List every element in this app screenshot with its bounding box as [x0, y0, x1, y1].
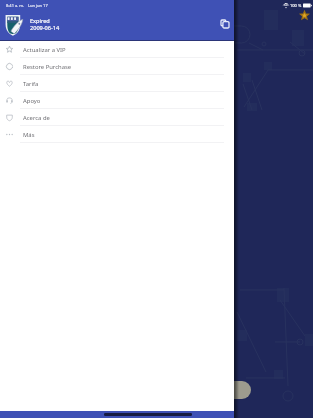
staticText: Apoyo: [23, 97, 41, 105]
button[interactable]: Apoyo: [0, 92, 234, 109]
button[interactable]: Tarifa: [0, 75, 234, 92]
button[interactable]: Premium: [300, 11, 309, 20]
staticText: 2009-06-14: [30, 24, 60, 32]
staticText: Expired: [30, 17, 50, 25]
button[interactable]: Copy: [218, 17, 232, 31]
button[interactable]: Acerca de: [0, 109, 234, 126]
staticText: 8:41 a. m.: [6, 3, 25, 8]
staticText: Actualizar a VIP: [23, 46, 66, 54]
staticText: Acerca de: [23, 114, 50, 122]
staticText: Más: [23, 131, 35, 139]
button[interactable]: Actualizar a VIP: [0, 41, 234, 58]
staticText: Tarifa: [23, 80, 39, 88]
button[interactable]: Restore Purchase: [0, 58, 234, 75]
button[interactable]: Más: [0, 126, 234, 143]
staticText: Restore Purchase: [23, 63, 72, 71]
staticText: 100 %: [290, 3, 302, 8]
staticText: Lun jun 17: [28, 3, 48, 8]
